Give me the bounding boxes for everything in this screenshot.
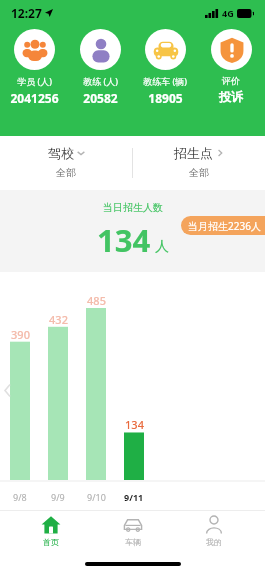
- staticText: 人: [155, 238, 169, 256]
- staticText: 485: [87, 293, 106, 308]
- button[interactable]: 教练车 (辆): [134, 29, 196, 106]
- staticText: 驾校: [48, 145, 74, 161]
- button[interactable]: 教练 (人): [69, 29, 131, 106]
- staticText: 全部: [56, 166, 76, 179]
- staticText: 9/11: [124, 491, 144, 503]
- staticText: 432: [49, 312, 68, 327]
- staticText: 12:27: [11, 5, 42, 21]
- staticText: 我的: [206, 537, 222, 547]
- staticText: 9/9: [51, 491, 65, 503]
- staticText: 9/10: [87, 491, 106, 503]
- button[interactable]: 我的: [183, 511, 245, 553]
- staticText: 2041256: [10, 90, 59, 106]
- staticText: 评价: [222, 75, 240, 86]
- staticText: 教练 (人): [83, 75, 118, 87]
- staticText: 134: [97, 219, 151, 261]
- staticText: 当日招生人数: [103, 201, 163, 214]
- staticText: 全部: [189, 166, 209, 179]
- staticText: 投诉: [219, 89, 243, 104]
- staticText: 学员 (人): [17, 75, 52, 87]
- staticText: 9/8: [13, 491, 27, 503]
- button[interactable]: 评价: [200, 29, 262, 104]
- staticText: 招生点: [174, 145, 213, 161]
- staticText: 4G: [222, 7, 234, 19]
- staticText: 当月招生2236人: [188, 219, 261, 233]
- staticText: 车辆: [125, 537, 141, 547]
- staticText: 18905: [148, 90, 183, 106]
- button[interactable]: 当月招生2236人: [181, 216, 265, 235]
- staticText: 390: [11, 327, 30, 342]
- staticText: 首页: [43, 537, 59, 547]
- button[interactable]: 首页: [20, 511, 82, 553]
- button[interactable]: 车辆: [102, 511, 164, 553]
- staticText: 20582: [83, 90, 118, 106]
- button[interactable]: 驾校: [0, 136, 132, 190]
- staticText: 134: [125, 417, 144, 432]
- staticText: 教练车 (辆): [143, 75, 187, 87]
- button[interactable]: 招生点: [133, 136, 265, 190]
- button[interactable]: 学员 (人): [3, 29, 65, 106]
